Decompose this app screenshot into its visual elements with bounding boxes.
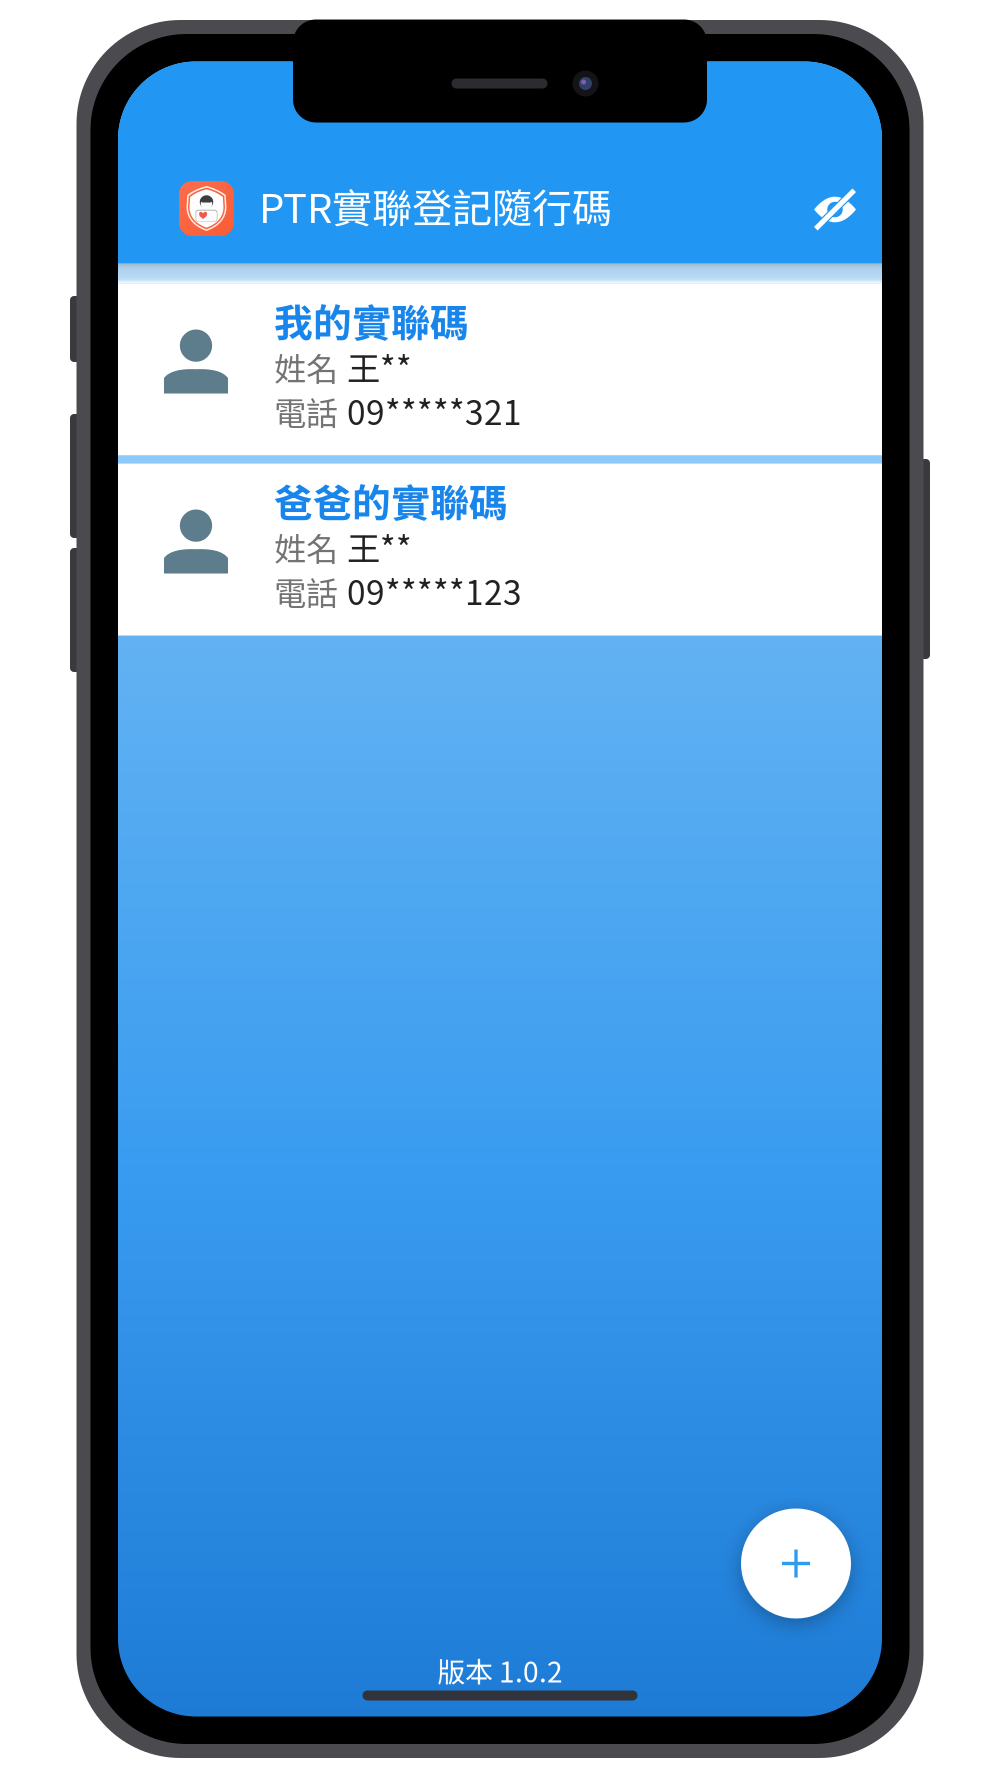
staticText: 版本 1.0.2: [437, 1650, 563, 1690]
staticText: 王**: [347, 522, 412, 571]
button[interactable]: 爸爸的實聯碼: [118, 463, 882, 635]
button[interactable]: Hide contact codes: [799, 173, 871, 245]
staticText: 我的實聯碼: [274, 292, 469, 348]
staticText: 電話: [274, 388, 338, 434]
staticText: 電話: [274, 568, 338, 614]
staticText: 09*****321: [347, 386, 522, 435]
staticText: 09*****123: [347, 566, 522, 615]
staticText: 王**: [347, 342, 412, 391]
button[interactable]: 我的實聯碼: [118, 283, 882, 455]
button[interactable]: Add contact code: [741, 1508, 851, 1618]
staticText: 姓名: [274, 344, 338, 390]
staticText: 姓名: [274, 524, 338, 570]
staticText: PTR實聯登記隨行碼: [259, 176, 612, 234]
staticText: 爸爸的實聯碼: [274, 472, 508, 528]
